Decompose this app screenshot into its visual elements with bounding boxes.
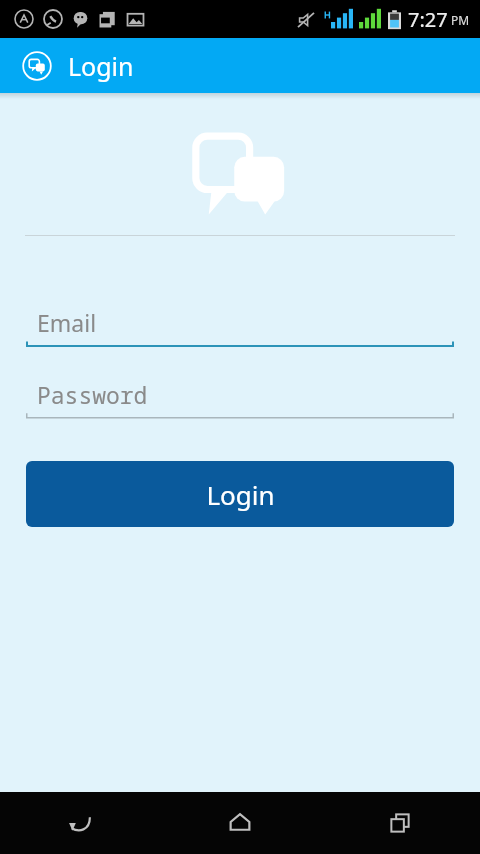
staticText: Login <box>206 477 275 512</box>
button[interactable]: Home <box>160 792 320 854</box>
staticText: PM <box>451 12 470 28</box>
button[interactable]: Password input <box>26 372 454 424</box>
button[interactable]: Login <box>26 461 454 527</box>
staticText: Email <box>37 307 97 338</box>
button[interactable]: Recent apps <box>320 792 480 854</box>
staticText: Login <box>68 49 134 83</box>
button[interactable]: Back <box>0 792 160 854</box>
other: App logo <box>22 51 52 81</box>
staticText: Password <box>37 379 148 410</box>
staticText: 7:27 <box>408 6 448 33</box>
button[interactable]: Email input <box>26 300 454 352</box>
